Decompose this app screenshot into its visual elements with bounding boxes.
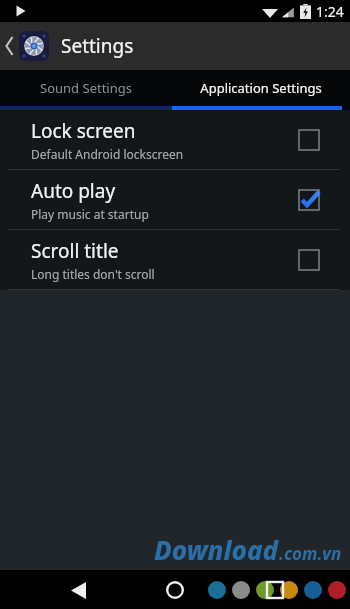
button[interactable]: Auto play: [0, 170, 350, 229]
staticText: .com.vn: [279, 542, 342, 565]
staticText: Scroll title: [31, 238, 119, 264]
staticText: Sound Settings: [40, 79, 132, 97]
button[interactable]: Sound Settings: [0, 70, 172, 106]
staticText: Application Settings: [200, 79, 322, 97]
button[interactable]: Back: [60, 572, 96, 608]
button[interactable]: Scroll title disabled: [295, 246, 323, 274]
button[interactable]: Lock screen disabled: [295, 126, 323, 154]
staticText: Lock screen: [31, 118, 136, 144]
button[interactable]: Application Settings: [172, 70, 350, 106]
button[interactable]: Auto play enabled: [295, 186, 323, 214]
staticText: Play music at startup: [31, 206, 149, 222]
staticText: 1:24: [316, 2, 344, 21]
staticText: Download: [154, 532, 279, 567]
staticText: Default Android lockscreen: [31, 146, 184, 162]
button[interactable]: Recent apps: [257, 572, 293, 608]
staticText: Settings: [61, 33, 134, 59]
staticText: Long titles don't scroll: [31, 266, 155, 282]
staticText: Auto play: [31, 178, 116, 204]
button[interactable]: Back: [3, 22, 17, 70]
button[interactable]: Scroll title: [0, 230, 350, 289]
button[interactable]: Lock screen: [0, 110, 350, 169]
button[interactable]: Home: [157, 572, 193, 608]
